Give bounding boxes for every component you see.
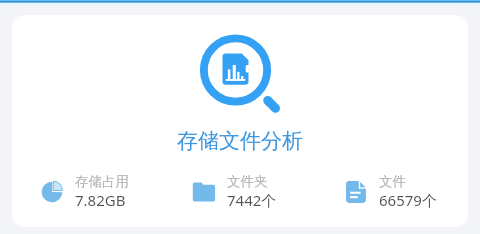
staticText: 文件 [379, 173, 406, 190]
staticText: 文件夹 [227, 173, 268, 190]
button[interactable]: 存储占用 [12, 173, 164, 210]
staticText: 存储占用 [75, 173, 129, 190]
staticText: 66579个 [379, 190, 437, 210]
staticText: 7.82GB [75, 190, 126, 210]
staticText: 存储文件分析 [12, 128, 468, 154]
button[interactable]: 存储文件分析 [12, 15, 468, 227]
staticText: 7442个 [227, 190, 277, 210]
button[interactable]: 文件 [316, 173, 468, 210]
button[interactable]: 文件夹 [164, 173, 316, 210]
